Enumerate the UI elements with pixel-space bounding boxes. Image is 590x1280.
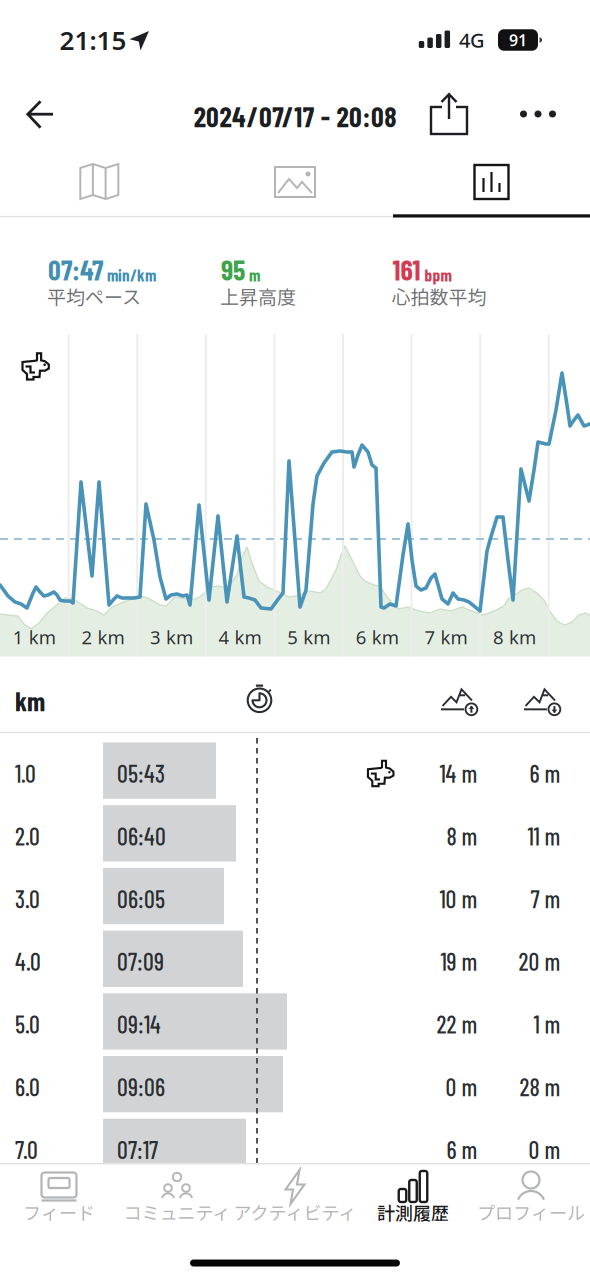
button[interactable]: More — [512, 90, 563, 138]
staticText: 07:17 — [117, 1135, 158, 1164]
staticText: 8 km — [493, 624, 536, 650]
staticText: 20 m — [518, 947, 560, 976]
staticText: 1 m — [533, 1010, 560, 1038]
staticText: 07:09 — [117, 947, 164, 976]
button[interactable]: Share — [423, 87, 475, 139]
staticText: 0 m — [528, 1135, 560, 1164]
staticText: 2 km — [81, 624, 124, 650]
staticText: アクティビティ — [233, 1199, 356, 1225]
staticText: 09:06 — [117, 1072, 165, 1101]
staticText: 10 m — [439, 884, 477, 913]
staticText: 6 m — [529, 759, 560, 788]
button[interactable]: Map — [0, 151, 196, 213]
staticText: 4.0 — [15, 947, 41, 976]
staticText: 7.0 — [15, 1135, 38, 1164]
staticText: 平均ペース — [47, 282, 141, 310]
button[interactable]: プロフィール — [472, 1165, 590, 1235]
staticText: 95 — [221, 252, 245, 286]
staticText: 07:47 — [48, 252, 103, 286]
staticText: m — [249, 265, 260, 285]
button[interactable]: Charts — [393, 151, 590, 213]
staticText: 14 m — [439, 759, 477, 788]
staticText: コミュニティ — [123, 1199, 230, 1225]
staticText: 5.0 — [15, 1010, 40, 1038]
staticText: 7 km — [424, 624, 467, 650]
staticText: 4G — [459, 26, 485, 54]
staticText: 6 km — [356, 624, 399, 650]
button[interactable]: アクティビティ — [236, 1165, 354, 1235]
button[interactable]: 計測履歴 — [354, 1165, 472, 1235]
staticText: プロフィール — [477, 1199, 585, 1225]
staticText: 3.0 — [15, 884, 40, 913]
staticText: 06:05 — [117, 884, 165, 913]
staticText: 11 m — [527, 821, 560, 850]
staticText: 4 km — [219, 624, 262, 650]
staticText: 161 — [392, 252, 420, 286]
button[interactable]: Photos — [197, 151, 393, 213]
button[interactable]: フィード — [0, 1165, 118, 1235]
staticText: 7 m — [530, 884, 560, 913]
staticText: 上昇高度 — [220, 282, 296, 310]
staticText: 5 km — [287, 624, 330, 650]
staticText: 8 m — [446, 821, 477, 850]
staticText: 1 km — [13, 624, 56, 650]
staticText: 28 m — [519, 1072, 560, 1101]
staticText: 心拍数平均 — [391, 282, 486, 310]
staticText: 19 m — [440, 947, 477, 976]
staticText: 22 m — [436, 1010, 477, 1038]
staticText: 21:15 — [59, 22, 126, 58]
staticText: 計測履歴 — [377, 1199, 449, 1225]
staticText: 91 — [509, 29, 527, 51]
staticText: 0 m — [445, 1072, 477, 1101]
button[interactable]: コミュニティ — [118, 1165, 236, 1235]
staticText: フィード — [23, 1199, 95, 1225]
staticText: 2024/07/17 - 20:08 — [194, 99, 396, 133]
staticText: 3 km — [150, 624, 193, 650]
staticText: min/km — [107, 265, 156, 285]
staticText: km — [15, 684, 45, 717]
staticText: 09:14 — [117, 1010, 161, 1038]
staticText: 2.0 — [15, 821, 40, 850]
staticText: bpm — [424, 265, 451, 285]
button[interactable]: Back — [22, 89, 74, 141]
staticText: 06:40 — [117, 821, 166, 850]
staticText: 05:43 — [117, 759, 165, 788]
staticText: 6.0 — [15, 1072, 40, 1101]
staticText: 1.0 — [15, 759, 36, 788]
staticText: 6 m — [446, 1135, 477, 1164]
